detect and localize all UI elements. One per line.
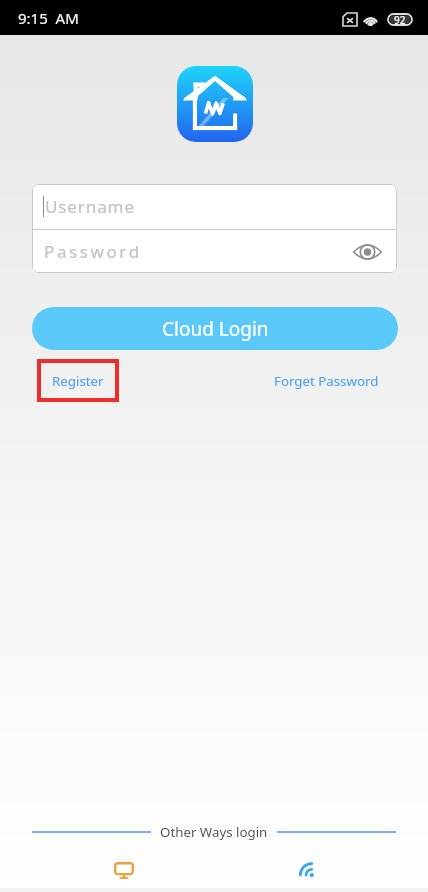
button[interactable]: Local login [94,848,153,892]
button[interactable]: Password [32,230,397,273]
button[interactable]: Forget Password [271,359,381,402]
staticText: 9:15 AM [18,8,79,28]
staticText: 92 [394,13,406,26]
staticText: Register [52,372,104,390]
staticText: Cloud Login [162,316,269,342]
button[interactable]: Register [37,359,119,402]
button[interactable]: Show password [352,237,382,267]
staticText: Username [45,195,135,218]
staticText: Forget Password [274,372,379,390]
button[interactable]: AP login [277,848,336,892]
staticText: Other Ways login [160,823,268,841]
staticText: Password [44,240,142,263]
button[interactable]: Username [32,184,397,229]
button[interactable]: Cloud Login [32,307,398,350]
